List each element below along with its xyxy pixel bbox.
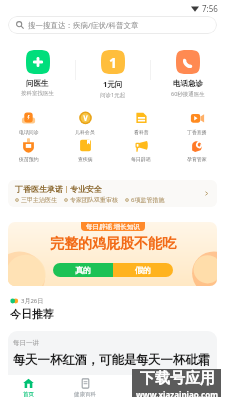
staticText: 孕育管家 <box>187 156 207 162</box>
button[interactable]: 搜一搜直达：疾病/症状/科普文章 <box>8 16 217 34</box>
staticText: 7:56 <box>202 3 218 14</box>
button[interactable]: 问医生 <box>0 50 75 97</box>
staticText: 电话问诊 <box>19 129 39 135</box>
staticText: 查疾病 <box>78 156 93 162</box>
staticText: 每日一讲 <box>13 339 39 347</box>
staticText: 问诊1元起 <box>100 91 126 99</box>
staticText: 3月26日 <box>21 297 44 305</box>
staticText: 儿科会员 <box>75 129 95 135</box>
button[interactable]: 健康百科 <box>57 375 113 400</box>
staticText: 首页 <box>23 391 34 398</box>
staticText: 问医生 <box>133 391 150 398</box>
staticText: 专家团队双重审核 <box>70 196 118 204</box>
staticText: 每日辟谣 增长知识 <box>86 222 140 231</box>
staticText: 1元问 <box>103 79 123 89</box>
staticText: 假的 <box>135 265 151 275</box>
button[interactable]: 儿科会员 <box>57 111 113 135</box>
other: 查看更多 <box>203 190 210 197</box>
button[interactable]: 查疾病 <box>57 138 113 162</box>
staticText: 电话急诊 <box>173 79 203 88</box>
staticText: 搜一搜直达：疾病/症状/科普文章 <box>28 20 139 30</box>
button[interactable]: 丁香医生承诺 <box>8 180 217 207</box>
button[interactable]: 看科普 <box>113 111 169 135</box>
staticText: www.xiazainiao.com <box>136 389 218 397</box>
button[interactable]: 我的 <box>169 375 225 400</box>
staticText: 看科普 <box>134 129 149 135</box>
button[interactable]: 1 <box>75 50 150 99</box>
staticText: 专业安全 <box>70 184 102 194</box>
button[interactable]: 每日一讲 <box>8 331 217 375</box>
button[interactable]: 电话急诊 <box>150 50 225 98</box>
button[interactable]: 疫苗预约 <box>0 138 57 162</box>
button[interactable]: 孕育管家 <box>169 138 225 162</box>
button[interactable]: 假的 <box>113 263 173 277</box>
button[interactable]: 每日辟谣 增长知识 <box>8 222 217 286</box>
staticText: 丁香医生承诺 <box>15 184 63 194</box>
button[interactable]: 每日辟谣 <box>113 138 169 162</box>
staticText: 下载号应用 <box>140 369 215 388</box>
staticText: 今日推荐 <box>10 307 54 321</box>
button[interactable]: 丁香直播 <box>169 111 225 135</box>
button[interactable]: 电话问诊 <box>0 111 57 135</box>
staticText: 真的 <box>75 265 91 275</box>
staticText: 60秒接通医生 <box>171 90 205 98</box>
staticText: 三甲主治医生 <box>21 196 57 204</box>
staticText: 每天一杯红酒，可能是每天一杯砒霜 <box>13 352 210 367</box>
staticText: 疫苗预约 <box>19 156 39 162</box>
staticText: 问医生 <box>26 79 49 88</box>
button[interactable]: 首页 <box>0 375 57 400</box>
staticText: 我的 <box>192 391 203 398</box>
button[interactable]: 真的 <box>53 263 113 277</box>
staticText: 按科室找医生 <box>21 90 54 97</box>
button[interactable]: 问医生 <box>113 375 169 400</box>
staticText: 每日辟谣 <box>131 156 151 162</box>
staticText: 6项监管措施 <box>131 196 165 204</box>
staticText: 1 <box>109 53 118 72</box>
staticText: 完整的鸡屁股不能吃 <box>50 235 176 253</box>
staticText: 丁香直播 <box>187 129 207 135</box>
staticText: 健康百科 <box>74 391 96 398</box>
